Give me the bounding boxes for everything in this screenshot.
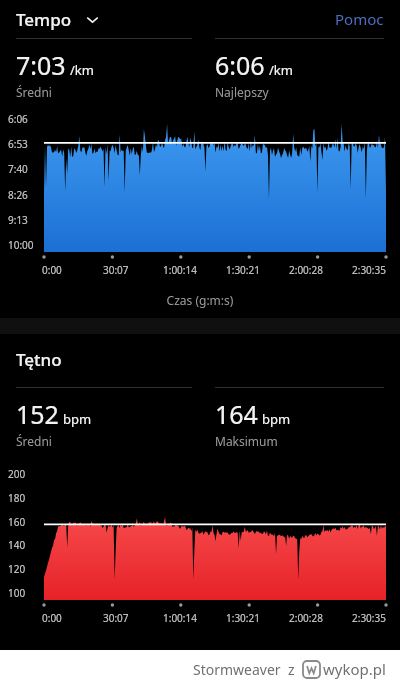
staticText: 1:30:21 [226, 263, 260, 277]
staticText: 1:00:14 [163, 611, 197, 625]
staticText: Najlepszy [215, 84, 269, 100]
button[interactable]: Tempo [16, 8, 100, 31]
staticText: 164 [215, 397, 258, 431]
staticText: 6:53 [8, 137, 28, 151]
button[interactable]: 7:03 [16, 38, 192, 100]
staticText: Tętno [16, 348, 62, 371]
button[interactable]: 152 [16, 387, 192, 449]
staticText: 6:06 [8, 112, 28, 126]
button[interactable]: 164 [215, 387, 384, 449]
staticText: 152 [16, 397, 59, 431]
other: Zmień metrykę [85, 12, 100, 27]
staticText: 10:00 [8, 238, 34, 252]
staticText: bpm [262, 410, 291, 428]
staticText: Średni [16, 84, 52, 100]
staticText: /km [70, 61, 94, 79]
staticText: Czas (g:m:s) [0, 292, 400, 308]
staticText: 140 [8, 538, 26, 552]
staticText: 160 [8, 515, 26, 529]
staticText: 8:26 [8, 188, 28, 202]
staticText: 2:00:28 [289, 263, 323, 277]
staticText: 1:30:21 [226, 611, 260, 625]
staticText: 30:07 [103, 263, 129, 277]
button[interactable]: 6:06 [215, 38, 384, 100]
staticText: 2:00:28 [289, 611, 323, 625]
staticText: 0:00 [42, 263, 62, 277]
other: wykop.pl [303, 661, 320, 678]
staticText: Średni [16, 433, 52, 449]
staticText: bpm [63, 410, 92, 428]
staticText: 7:40 [8, 162, 28, 176]
staticText: 100 [8, 586, 26, 600]
staticText: Stormweaver z [193, 660, 295, 679]
staticText: 1:00:14 [163, 263, 197, 277]
button[interactable]: Pomoc [335, 9, 384, 29]
staticText: Tempo [16, 8, 72, 31]
staticText: /km [269, 61, 293, 79]
staticText: 0:00 [42, 611, 62, 625]
staticText: Maksimum [215, 433, 278, 449]
staticText: 200 [8, 467, 26, 481]
staticText: 120 [8, 562, 26, 576]
staticText: wykop.pl [323, 659, 386, 679]
staticText: 2:30:35 [352, 263, 386, 277]
staticText: 9:13 [8, 213, 28, 227]
staticText: 7:03 [16, 48, 66, 82]
staticText: 6:06 [215, 48, 265, 82]
staticText: 2:30:35 [352, 611, 386, 625]
staticText: Pomoc [335, 9, 384, 29]
staticText: 30:07 [103, 611, 129, 625]
staticText: 180 [8, 491, 26, 505]
